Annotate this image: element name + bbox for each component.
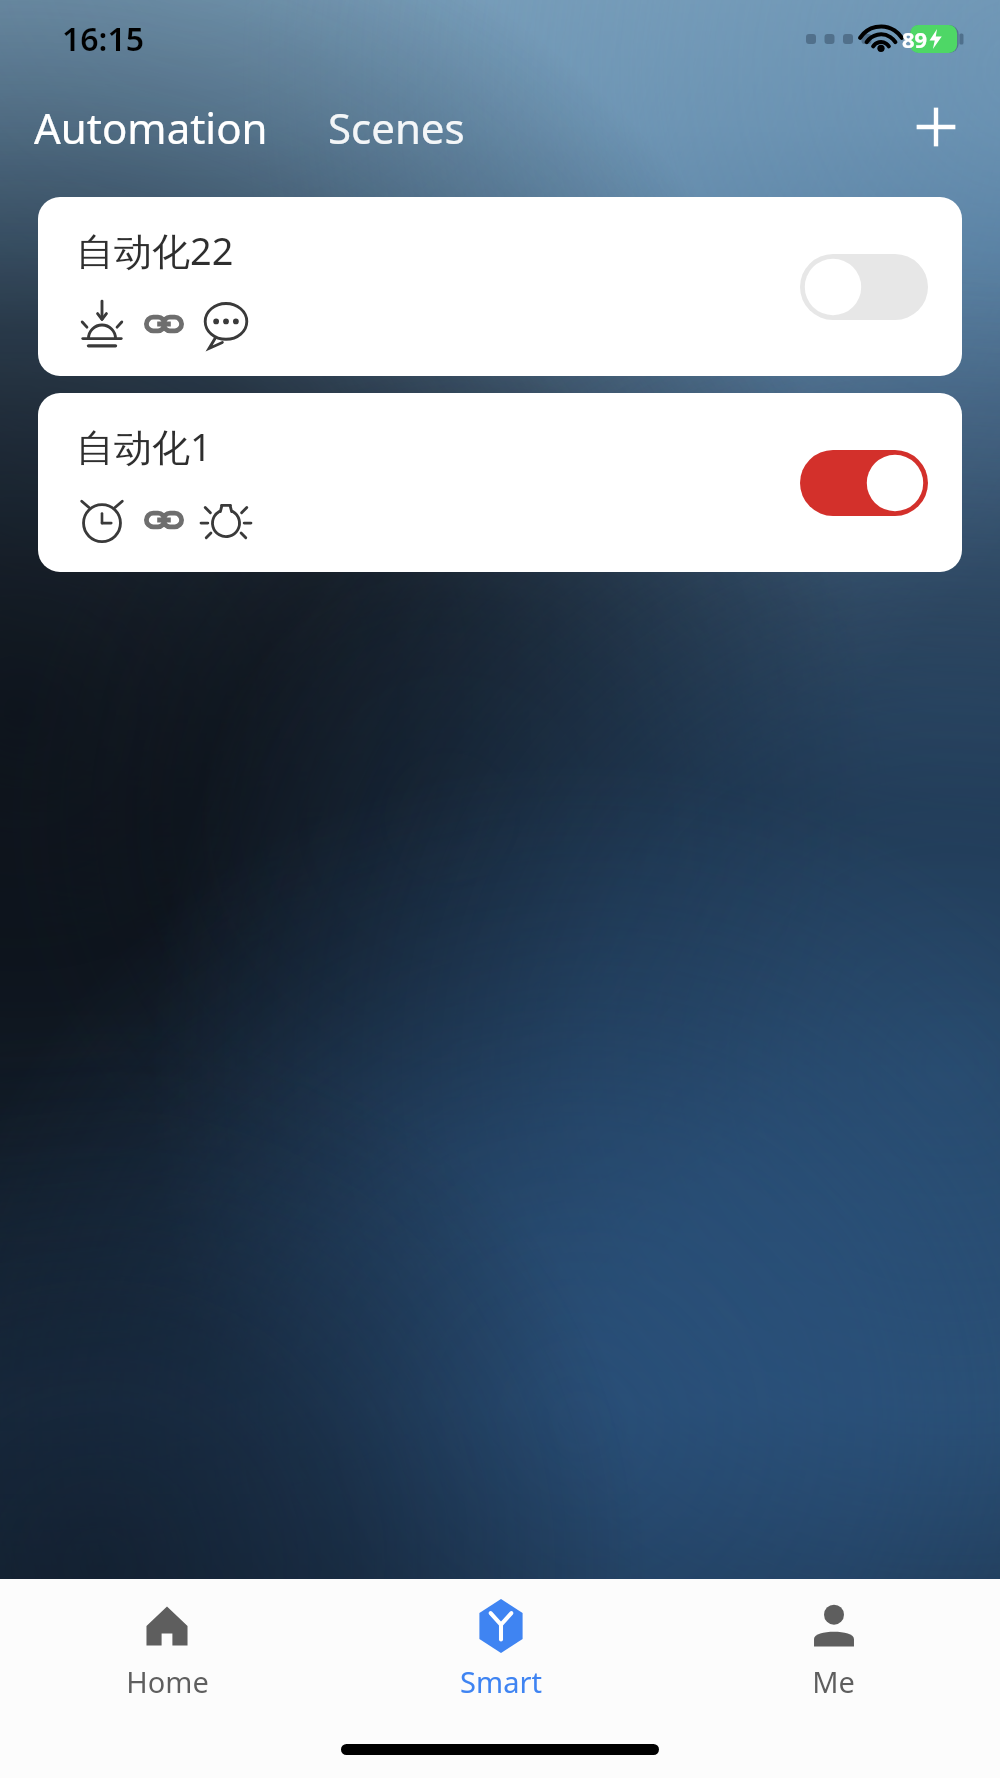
staticText: Home xyxy=(126,1662,209,1701)
button[interactable]: Me xyxy=(667,1579,1000,1721)
button[interactable]: Automation xyxy=(32,91,270,164)
button[interactable]: Home xyxy=(0,1579,334,1721)
staticText: Me xyxy=(812,1662,855,1701)
staticText: Scenes xyxy=(328,99,465,156)
staticText: 自动化22 xyxy=(76,224,234,276)
staticText: 自动化1 xyxy=(76,420,212,472)
staticText: 16:15 xyxy=(62,17,145,61)
button[interactable]: Disable 自动化1 xyxy=(800,450,928,516)
button[interactable]: 自动化22 xyxy=(38,197,962,376)
staticText: Smart xyxy=(460,1662,542,1701)
button[interactable]: Enable 自动化22 xyxy=(800,254,928,320)
button[interactable]: 自动化1 xyxy=(38,393,962,572)
button[interactable]: Smart xyxy=(334,1579,667,1721)
button[interactable]: Scenes xyxy=(326,91,467,164)
button[interactable]: Add automation xyxy=(898,89,974,165)
staticText: 89 xyxy=(902,24,928,54)
staticText: Automation xyxy=(34,99,268,156)
